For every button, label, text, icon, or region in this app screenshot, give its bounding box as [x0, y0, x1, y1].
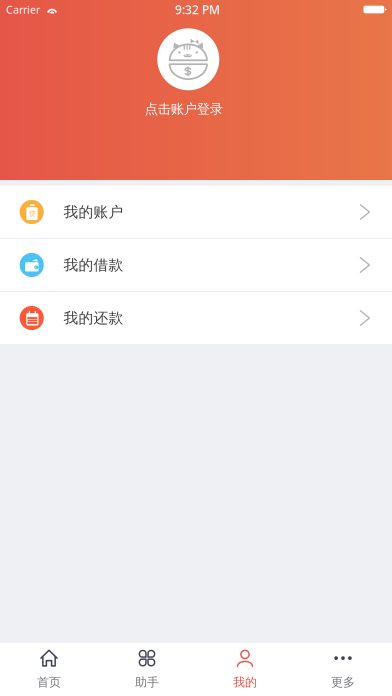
staticText: 点击账户登录	[145, 101, 223, 117]
button[interactable]: 更多	[294, 642, 392, 696]
button[interactable]: 首页	[0, 642, 98, 696]
staticText: 我的账户	[63, 203, 123, 221]
staticText: 首页	[37, 675, 61, 689]
staticText: 我的	[233, 675, 257, 689]
button[interactable]: 助手	[98, 642, 196, 696]
staticText: 9:32 PM	[175, 1, 220, 17]
button[interactable]: 点击账户登录	[157, 28, 235, 117]
button[interactable]: 我的	[196, 642, 294, 696]
button[interactable]: 我的借款	[0, 239, 392, 291]
button[interactable]: 我的还款	[0, 292, 392, 344]
staticText: 我的借款	[63, 256, 123, 274]
staticText: 更多	[331, 675, 355, 689]
staticText: 我的还款	[63, 309, 123, 327]
staticText: 助手	[135, 675, 159, 689]
staticText: Carrier	[6, 2, 40, 17]
button[interactable]: 贷	[0, 186, 392, 238]
staticText: 贷	[29, 210, 36, 218]
